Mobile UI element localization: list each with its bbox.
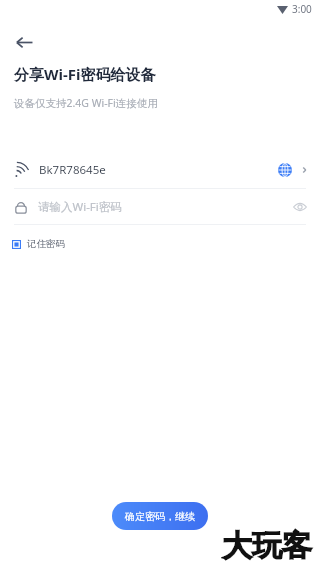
button[interactable]: 记住密码 [12,233,65,255]
staticText: 大玩客 [222,527,312,565]
staticText: 记住密码 [27,238,65,250]
button[interactable]: Bk7R78645e [0,152,320,188]
button[interactable]: 确定密码，继续 [112,502,208,530]
staticText: 分享Wi-Fi密码给设备 [14,64,156,84]
staticText: Bk7R78645e [39,162,106,178]
staticText: 3:00 [292,2,312,16]
button[interactable]: 请输入Wi-Fi密码 [0,189,320,224]
staticText: 请输入Wi-Fi密码 [38,199,122,215]
staticText: 确定密码，继续 [125,510,195,523]
staticText: 设备仅支持2.4G Wi-Fi连接使用 [14,96,158,110]
button[interactable]: Back [6,24,42,60]
button[interactable]: Show password [290,197,310,217]
